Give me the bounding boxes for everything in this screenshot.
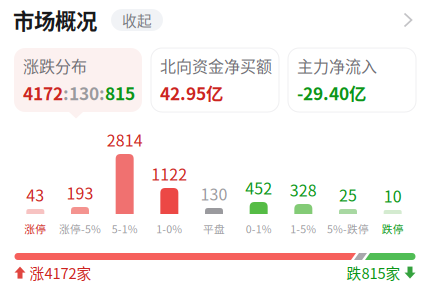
staticText: 452 — [245, 176, 272, 199]
staticText: 4172 — [23, 80, 63, 105]
staticText: 涨4172家 — [29, 262, 91, 283]
staticText: 涨停-5% — [59, 221, 101, 236]
staticText: 1-0% — [156, 221, 182, 236]
staticText: 1-5% — [290, 221, 316, 236]
staticText: 815 — [105, 80, 135, 105]
staticText: 收起 — [122, 9, 152, 31]
staticText: :130: — [63, 80, 105, 105]
staticText: 2814 — [107, 128, 143, 151]
staticText: 北向资金净买额 — [160, 54, 272, 77]
staticText: 5%-跌停 — [327, 221, 369, 236]
staticText: 跌815家 — [346, 262, 400, 283]
staticText: 25 — [339, 183, 357, 206]
staticText: 平盘 — [203, 221, 225, 236]
staticText: 1122 — [151, 162, 187, 185]
staticText: -29.40亿 — [297, 80, 366, 105]
button[interactable]: 收起 — [111, 9, 163, 31]
button[interactable]: 展开市场概况详情 — [397, 9, 419, 31]
staticText: 10 — [384, 184, 402, 207]
staticText: 328 — [290, 178, 317, 201]
staticText: 193 — [66, 181, 93, 204]
staticText: 市场概况 — [13, 5, 97, 35]
staticText: 涨停 — [24, 221, 46, 236]
staticText: 0-1% — [246, 221, 272, 236]
staticText: 42.95亿 — [160, 80, 223, 105]
staticText: 主力净流入 — [297, 54, 377, 77]
staticText: 涨跌分布 — [23, 54, 87, 77]
staticText: 5-1% — [112, 221, 138, 236]
staticText: 43 — [26, 183, 44, 206]
staticText: 130 — [200, 182, 227, 205]
staticText: 跌停 — [382, 221, 404, 236]
